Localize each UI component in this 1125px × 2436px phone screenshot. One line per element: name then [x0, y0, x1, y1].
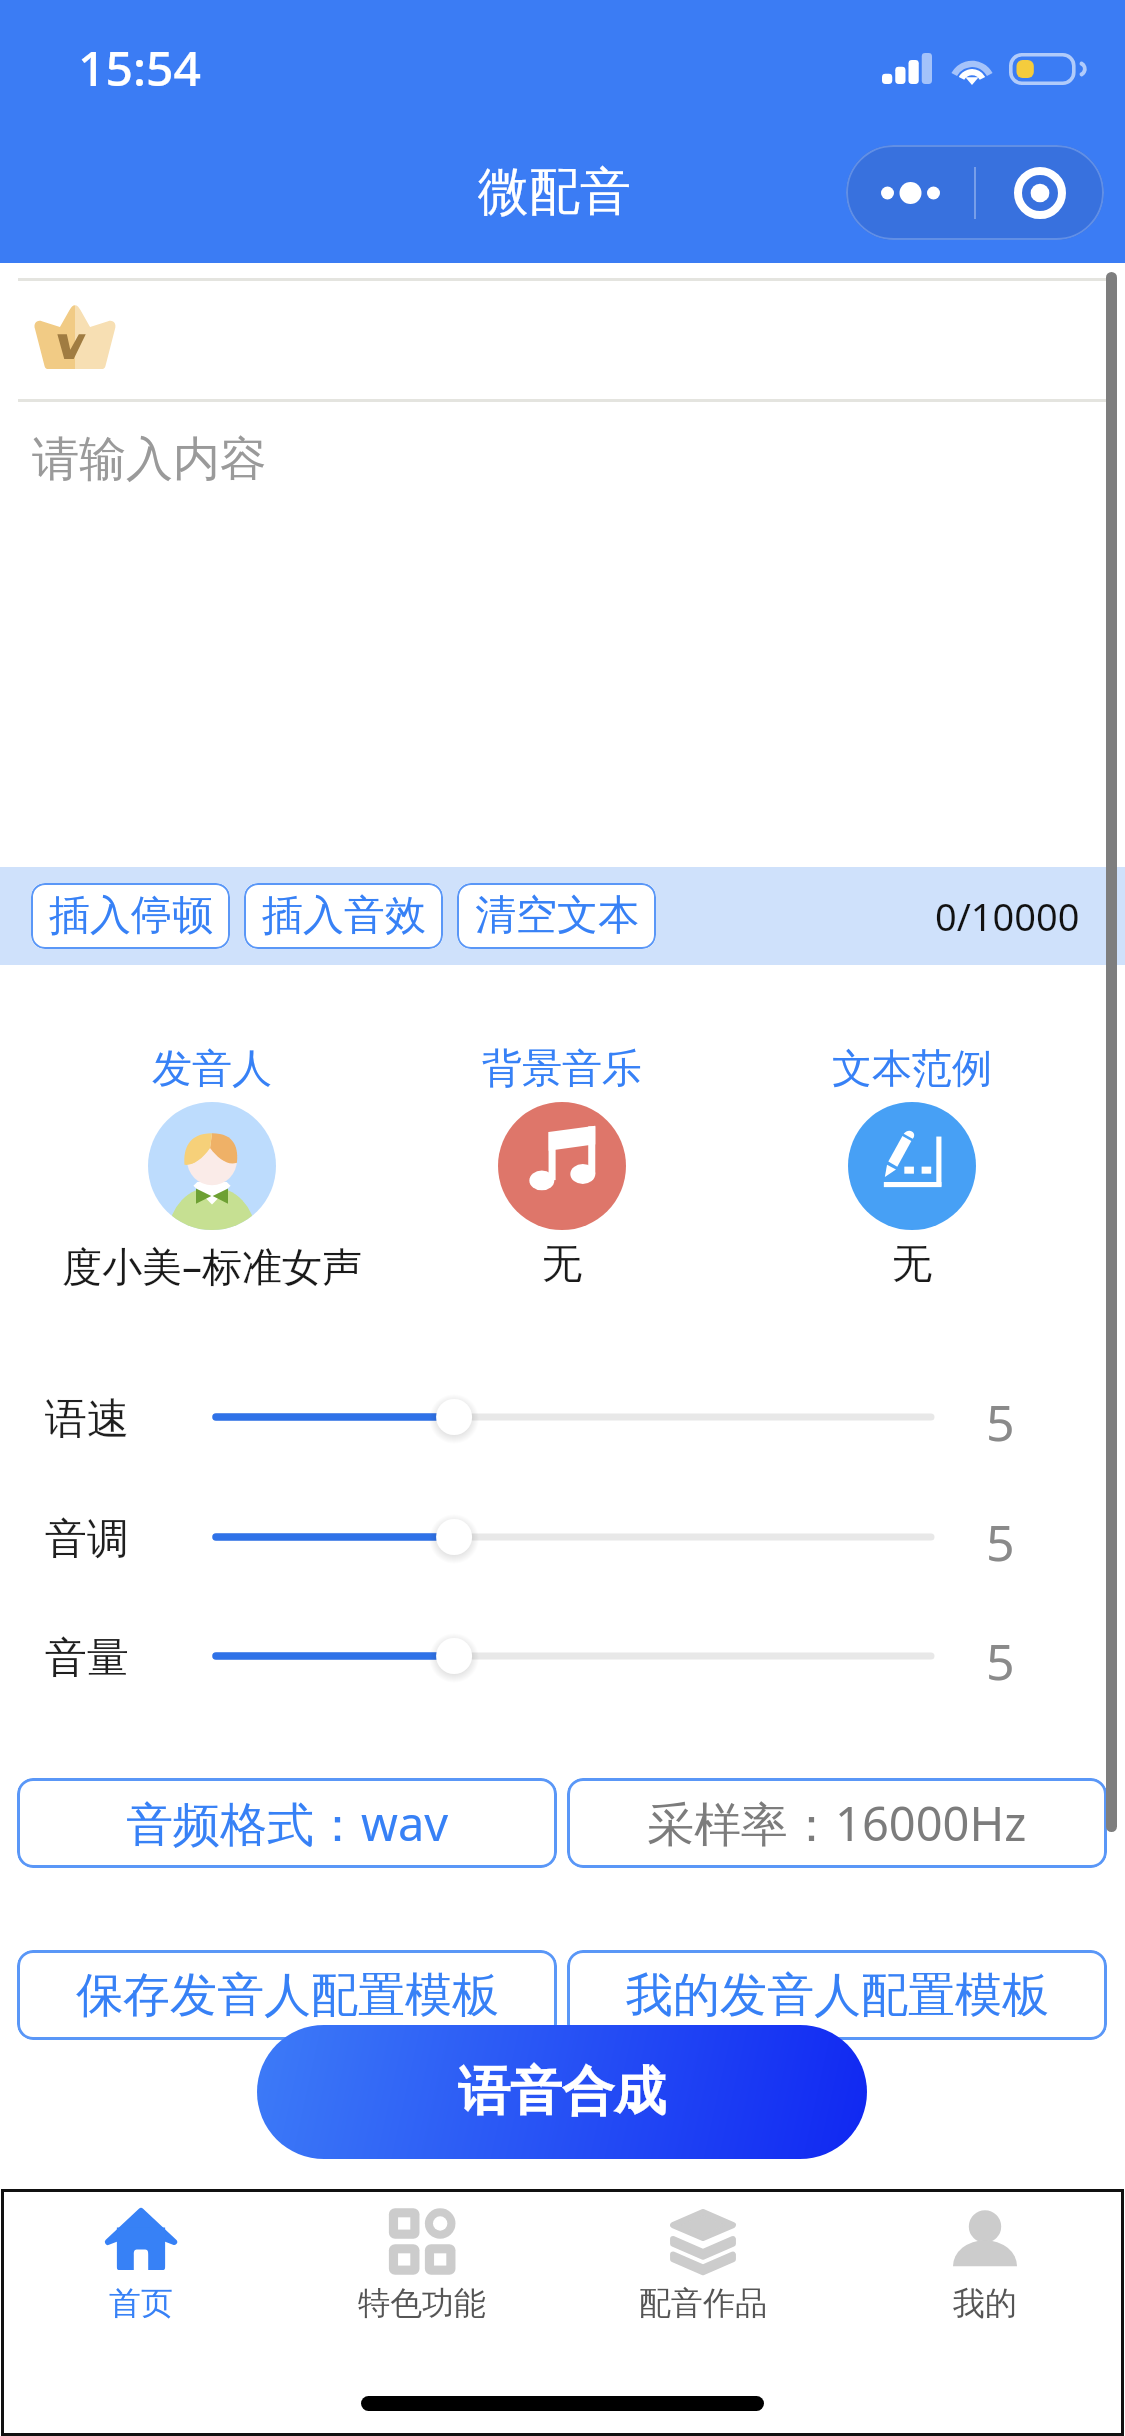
button[interactable]: 背景音乐 — [302, 1043, 822, 1288]
button[interactable]: 请输入内容 — [0, 402, 1125, 867]
button[interactable]: 采样率：16000Hz — [567, 1778, 1107, 1868]
button[interactable]: 语音合成 — [257, 2025, 867, 2159]
staticText: 5 — [986, 1627, 1015, 1695]
staticText: 语速 — [45, 1393, 129, 1446]
staticText: 无 — [542, 1238, 582, 1288]
staticText: 保存发音人配置模板 — [76, 1966, 499, 2025]
staticText: 度小美–标准女声 — [62, 1238, 362, 1293]
button[interactable]: 文本范例 — [652, 1043, 1125, 1288]
staticText: 采样率：16000Hz — [647, 1791, 1027, 1855]
button[interactable]: 发音人 — [0, 1043, 472, 1293]
button[interactable]: 首页 — [0, 2192, 281, 2332]
button[interactable] — [196, 1497, 951, 1577]
button[interactable]: 特色功能 — [281, 2192, 562, 2332]
button[interactable]: 我的发音人配置模板 — [567, 1950, 1107, 2040]
staticText: 微配音 — [478, 160, 631, 224]
staticText: 特色功能 — [358, 2283, 486, 2323]
staticText: 5 — [986, 1388, 1015, 1456]
button[interactable]: 配音作品 — [562, 2192, 843, 2332]
button[interactable] — [196, 1616, 951, 1696]
staticText: 插入音效 — [262, 890, 426, 942]
staticText: 15:54 — [78, 35, 201, 100]
staticText: 配音作品 — [639, 2283, 767, 2323]
staticText: 音调 — [45, 1513, 129, 1566]
button[interactable]: 插入停顿 — [31, 883, 230, 949]
staticText: 我的 — [953, 2283, 1017, 2323]
button[interactable]: 插入音效 — [244, 883, 443, 949]
button[interactable]: 我的 — [844, 2192, 1125, 2332]
staticText: 音量 — [45, 1632, 129, 1685]
staticText: 无 — [892, 1238, 932, 1288]
staticText: 文本范例 — [832, 1043, 992, 1093]
button[interactable]: 清空文本 — [457, 883, 656, 949]
staticText: 音频格式：wav — [126, 1791, 449, 1855]
staticText: 背景音乐 — [482, 1043, 642, 1093]
staticText: 0/10000 — [935, 890, 1080, 942]
staticText: 清空文本 — [475, 890, 639, 942]
staticText: 发音人 — [152, 1043, 272, 1093]
button[interactable]: Close mini program — [976, 145, 1104, 240]
staticText: 5 — [986, 1508, 1015, 1576]
staticText: 语音合成 — [458, 2059, 666, 2125]
staticText: 请输入内容 — [32, 430, 267, 489]
button[interactable]: VIP — [32, 304, 118, 370]
button[interactable] — [196, 1377, 951, 1457]
button[interactable]: 音频格式：wav — [17, 1778, 557, 1868]
staticText: 首页 — [109, 2283, 173, 2323]
button[interactable]: More options — [846, 145, 974, 240]
staticText: 我的发音人配置模板 — [626, 1966, 1049, 2025]
button[interactable]: 保存发音人配置模板 — [17, 1950, 557, 2040]
staticText: 插入停顿 — [49, 890, 213, 942]
